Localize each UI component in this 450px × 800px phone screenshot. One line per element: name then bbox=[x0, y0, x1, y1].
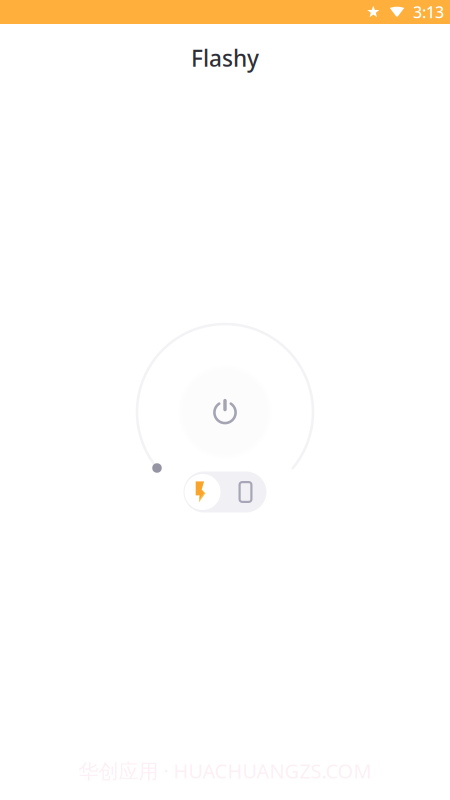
staticText: Flashy bbox=[191, 43, 259, 73]
staticText: 3:13 bbox=[413, 1, 444, 23]
staticText: 华创应用 · HUACHUANGZS.COM bbox=[78, 757, 371, 784]
button[interactable]: Flashlight bbox=[183, 471, 221, 512]
button[interactable]: Screen light bbox=[224, 471, 266, 512]
